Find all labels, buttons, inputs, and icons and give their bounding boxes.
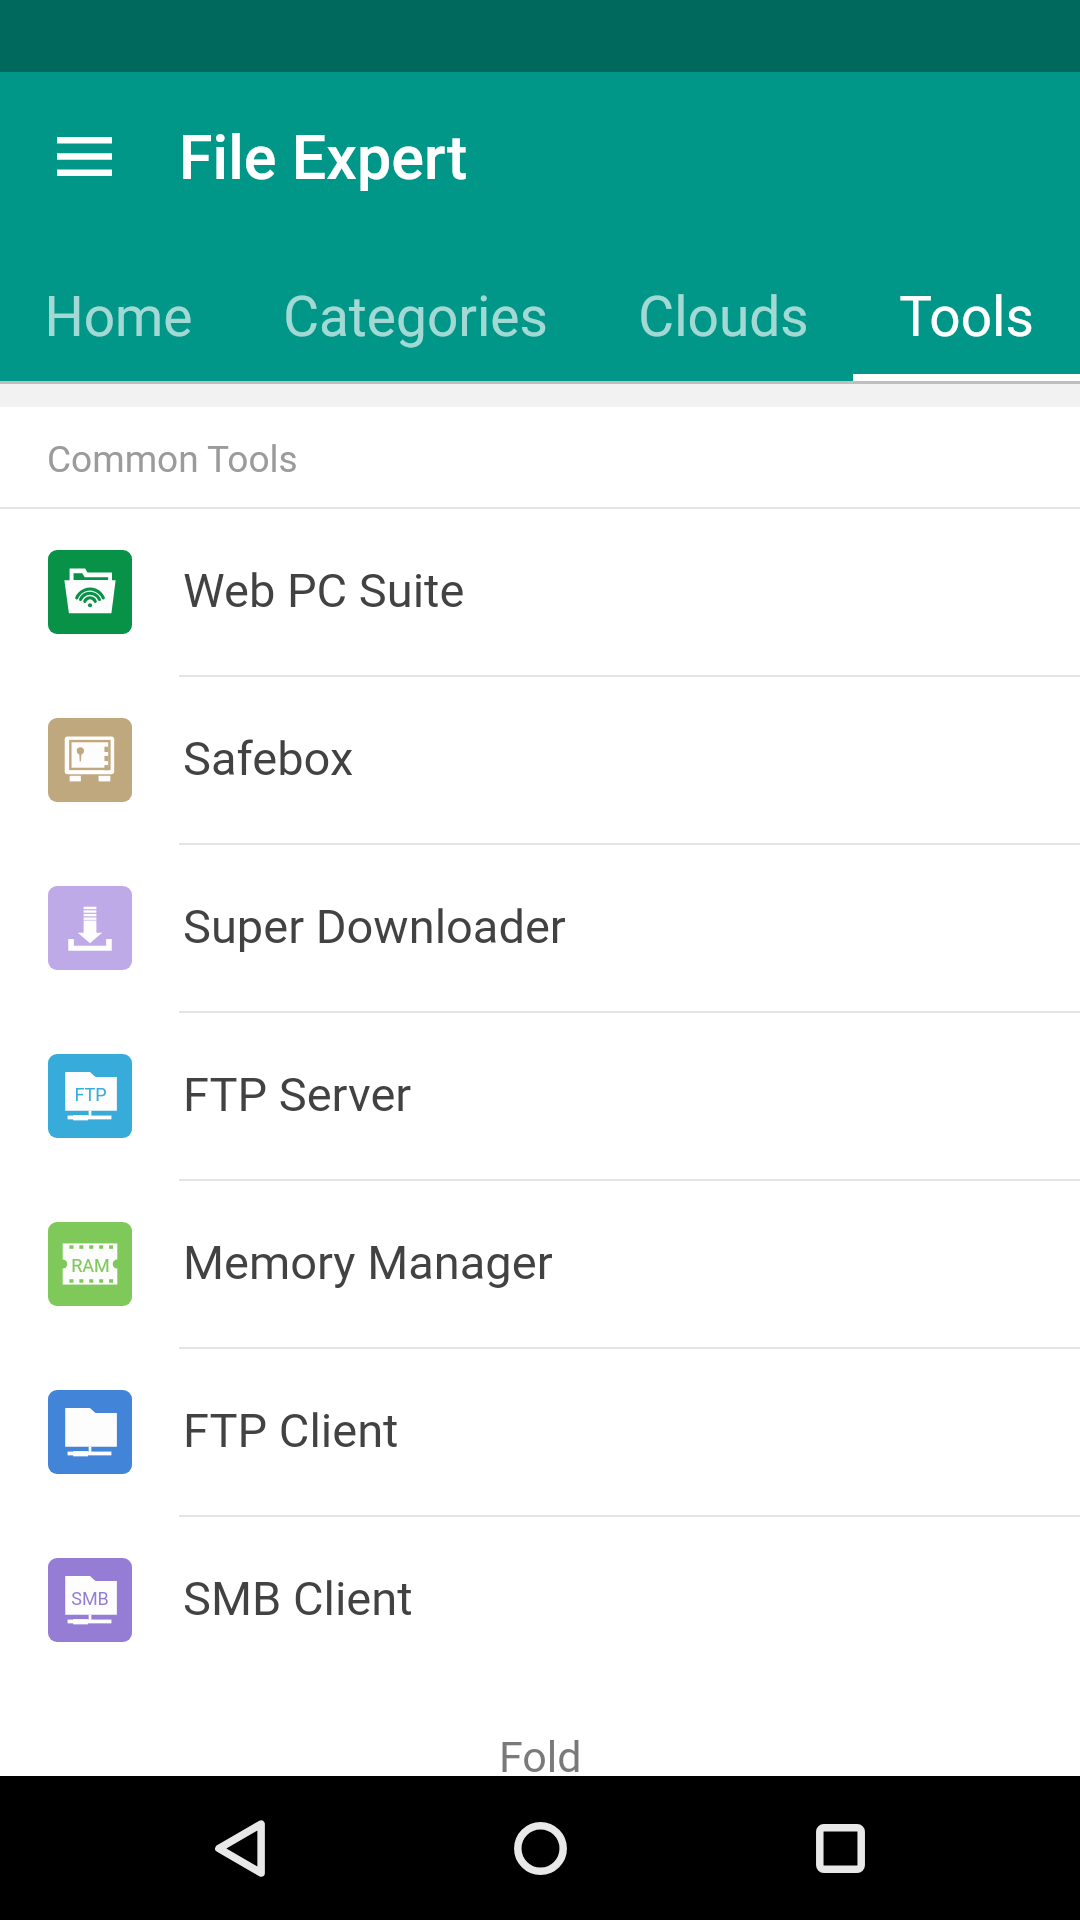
button[interactable]: Tools xyxy=(853,266,1080,381)
staticText: FTP xyxy=(74,1084,107,1105)
button[interactable]: Safebox xyxy=(0,677,1080,843)
button[interactable]: Recent apps xyxy=(690,1776,990,1920)
button[interactable]: Home xyxy=(0,266,236,381)
button[interactable]: Web PC Suite xyxy=(0,509,1080,675)
staticText: SMB Client xyxy=(183,1571,413,1626)
staticText: FTP Client xyxy=(183,1403,399,1458)
staticText: FTP Server xyxy=(183,1067,412,1122)
staticText: Clouds xyxy=(638,285,809,349)
button[interactable]: FTP Client xyxy=(0,1349,1080,1515)
button[interactable]: FTP xyxy=(0,1013,1080,1179)
staticText: Web PC Suite xyxy=(183,563,465,618)
button[interactable]: Back xyxy=(90,1776,390,1920)
button[interactable]: Clouds xyxy=(594,266,853,381)
staticText: Categories xyxy=(283,285,548,349)
button[interactable]: Categories xyxy=(236,266,594,381)
staticText: Home xyxy=(44,285,193,349)
button[interactable]: Home xyxy=(390,1776,690,1920)
staticText: Safebox xyxy=(183,731,354,786)
button[interactable]: Fold xyxy=(499,1732,582,1782)
staticText: Memory Manager xyxy=(183,1235,553,1290)
staticText: RAM xyxy=(71,1255,110,1276)
staticText: Tools xyxy=(899,285,1034,349)
button[interactable]: RAM xyxy=(0,1181,1080,1347)
button[interactable]: Open navigation menu xyxy=(12,84,156,228)
staticText: SMB xyxy=(71,1588,109,1609)
button[interactable]: SMB xyxy=(0,1517,1080,1683)
staticText: Super Downloader xyxy=(183,899,566,954)
staticText: Common Tools xyxy=(47,438,298,481)
staticText: File Expert xyxy=(179,122,468,193)
button[interactable]: Super Downloader xyxy=(0,845,1080,1011)
